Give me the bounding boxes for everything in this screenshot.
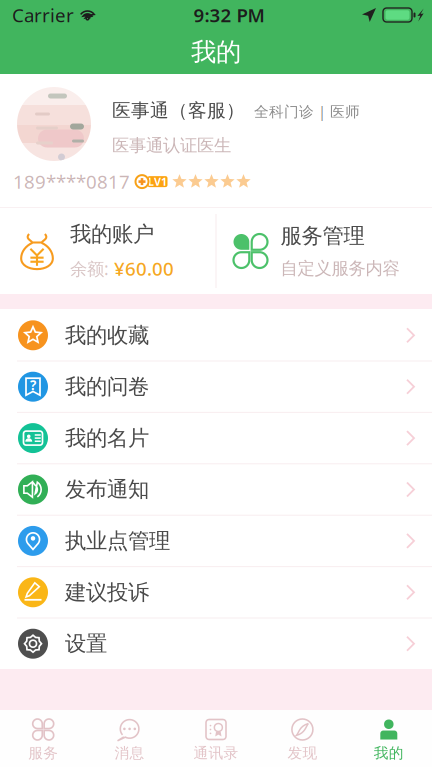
button[interactable]: 消息 (86, 710, 173, 767)
staticText: 余额: (70, 257, 109, 280)
staticText: 我的 (374, 744, 404, 762)
staticText: 我的名片 (65, 425, 149, 451)
staticText: 执业点管理 (65, 528, 170, 554)
staticText: 建议投诉 (65, 579, 149, 605)
staticText: 医事通（客服） (112, 99, 245, 122)
button[interactable]: 建议投诉 (0, 566, 432, 617)
staticText: 服务 (28, 744, 58, 762)
staticText: LV1 (148, 174, 167, 189)
staticText: 服务管理 (280, 223, 364, 249)
staticText: 全科门诊 | 医师 (254, 101, 360, 121)
staticText: 我的收藏 (65, 322, 149, 348)
button[interactable]: 我的 (346, 710, 432, 767)
staticText: ? (30, 376, 36, 394)
staticText: 发布通知 (65, 476, 149, 503)
button[interactable]: 发现 (259, 710, 346, 767)
button[interactable]: 我的名片 (0, 412, 432, 463)
staticText: 通讯录 (193, 744, 238, 762)
button[interactable]: ? (0, 360, 432, 412)
button[interactable]: 服务 (0, 710, 86, 767)
staticText: 自定义服务内容 (280, 258, 399, 279)
button[interactable]: 发布通知 (0, 463, 432, 515)
staticText: 医事通认证医生 (112, 135, 231, 156)
button[interactable]: 通讯录 (173, 710, 259, 767)
button[interactable]: 我的账户 (0, 208, 215, 294)
staticText: 发现 (287, 744, 317, 762)
staticText: 我的账户 (70, 221, 154, 247)
button[interactable]: 服务管理 (216, 208, 432, 294)
staticText: 9:32 PM (193, 3, 264, 27)
staticText: 设置 (65, 631, 107, 657)
staticText: 我的问卷 (65, 374, 149, 400)
staticText: 我的 (191, 36, 241, 67)
staticText: 189****0817 (13, 169, 130, 194)
button[interactable]: 我的收藏 (0, 309, 432, 360)
staticText: Carrier (12, 3, 74, 27)
staticText: 消息 (115, 744, 145, 762)
button[interactable]: 执业点管理 (0, 515, 432, 566)
button[interactable]: 设置 (0, 617, 432, 669)
staticText: ¥60.00 (114, 256, 174, 281)
